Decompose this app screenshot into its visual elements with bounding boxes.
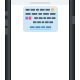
button[interactable]: Message with link — [23, 6, 58, 32]
